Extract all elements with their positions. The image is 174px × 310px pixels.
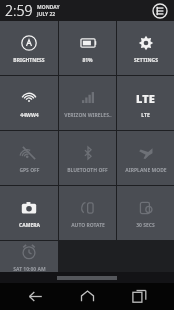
button[interactable]: LTE [117,76,174,130]
staticText: BRIGHTNESS [13,57,45,64]
button[interactable]: AIRPLANE MODE [117,131,174,185]
button[interactable]: 44WW4 [0,76,58,130]
button[interactable]: 81% [59,21,116,75]
button[interactable]: Switch to list view [151,2,169,20]
staticText: GPS OFF [19,167,40,174]
staticText: SETTINGS [134,57,158,64]
button[interactable]: BLUETOOTH OFF [59,131,116,185]
staticText: 30 SECS [136,222,155,229]
staticText: 2:59 [5,1,33,20]
button[interactable]: 30 SECS [117,186,174,240]
button[interactable]: AUTO ROTATE [59,186,116,240]
button[interactable]: BRIGHTNESS [0,21,58,75]
staticText: 44WW4 [20,112,39,119]
staticText: LTE [136,91,155,106]
staticText: MONDAY [37,4,60,11]
button[interactable]: SAT 10:00 AM [0,241,58,273]
staticText: LTE [141,112,150,119]
button[interactable]: SETTINGS [117,21,174,75]
staticText: 81% [82,57,93,64]
button[interactable]: VERIZON WIRELES.. [59,76,116,130]
staticText: BLUETOOTH OFF [67,167,108,174]
button[interactable]: CAMERA [0,186,58,240]
staticText: AIRPLANE MODE [125,167,167,174]
button[interactable]: Home [70,283,104,310]
button[interactable]: Recent apps [122,283,156,310]
staticText: AUTO ROTATE [71,222,105,229]
staticText: CAMERA [19,222,40,229]
staticText: VERIZON WIRELES.. [64,112,112,119]
staticText: JULY 22 [37,11,56,18]
staticText: SAT 10:00 AM [13,266,46,273]
button[interactable]: Back [18,283,52,310]
button[interactable]: GPS OFF [0,131,58,185]
